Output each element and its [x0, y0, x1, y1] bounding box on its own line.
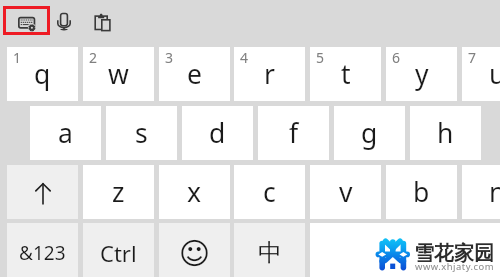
- button[interactable]: 1: [7, 47, 78, 101]
- button[interactable]: [310, 223, 500, 277]
- button[interactable]: Voice typing: [57, 10, 71, 30]
- staticText: 中: [258, 238, 282, 268]
- button[interactable]: [7, 165, 78, 219]
- staticText: d: [209, 115, 226, 151]
- staticText: ☺: [179, 236, 211, 271]
- button[interactable]: 3: [159, 47, 230, 101]
- staticText: b: [413, 174, 430, 210]
- button[interactable]: Keyboard settings: [3, 6, 50, 35]
- staticText: 雪花家园: [414, 241, 494, 266]
- button[interactable]: 5: [310, 47, 381, 101]
- staticText: 1: [13, 48, 22, 67]
- button[interactable]: Ctrl: [83, 223, 154, 277]
- button[interactable]: f: [258, 106, 329, 160]
- staticText: 4: [240, 48, 249, 67]
- staticText: a: [58, 115, 73, 151]
- staticText: q: [34, 56, 51, 92]
- button[interactable]: Clipboard: [94, 10, 111, 31]
- button[interactable]: c: [234, 165, 305, 219]
- staticText: x: [187, 174, 202, 210]
- staticText: h: [437, 115, 454, 151]
- staticText: s: [135, 115, 148, 151]
- button[interactable]: n: [462, 165, 500, 219]
- button[interactable]: 4: [234, 47, 305, 101]
- button[interactable]: v: [310, 165, 381, 219]
- staticText: z: [112, 174, 125, 210]
- staticText: t: [341, 56, 351, 92]
- staticText: Ctrl: [100, 238, 137, 268]
- staticText: n: [489, 174, 500, 210]
- staticText: f: [289, 115, 299, 151]
- button[interactable]: z: [83, 165, 154, 219]
- button[interactable]: d: [182, 106, 253, 160]
- staticText: v: [339, 174, 353, 210]
- button[interactable]: &123: [7, 223, 78, 277]
- staticText: c: [263, 174, 276, 210]
- button[interactable]: b: [386, 165, 457, 219]
- staticText: g: [361, 115, 378, 151]
- staticText: r: [264, 56, 275, 92]
- staticText: w: [108, 56, 129, 92]
- button[interactable]: 6: [386, 47, 457, 101]
- staticText: e: [187, 56, 202, 92]
- button[interactable]: x: [159, 165, 230, 219]
- button[interactable]: 中: [234, 223, 305, 277]
- staticText: 3: [165, 48, 174, 67]
- button[interactable]: h: [410, 106, 481, 160]
- staticText: 6: [392, 48, 401, 67]
- staticText: &123: [19, 240, 66, 266]
- staticText: y: [415, 56, 429, 92]
- staticText: 2: [89, 48, 98, 67]
- staticText: 7: [468, 48, 477, 67]
- staticText: www.xhjaty.com: [415, 260, 495, 273]
- button[interactable]: 2: [83, 47, 154, 101]
- button[interactable]: ☺: [159, 223, 230, 277]
- button[interactable]: 7: [462, 47, 500, 101]
- button[interactable]: s: [106, 106, 177, 160]
- staticText: 5: [316, 48, 325, 67]
- button[interactable]: a: [30, 106, 101, 160]
- staticText: u: [489, 56, 500, 92]
- button[interactable]: g: [334, 106, 405, 160]
